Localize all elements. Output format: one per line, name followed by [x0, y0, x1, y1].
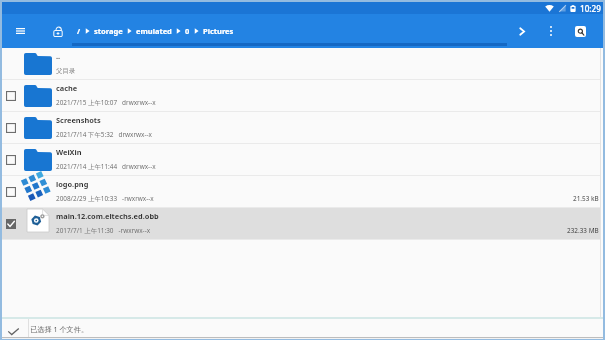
- button[interactable]: Unlock storage: [50, 23, 66, 39]
- staticText: logo.png: [56, 179, 89, 189]
- button[interactable]: Forward: [514, 23, 530, 39]
- staticText: 已选择 1 个文件。: [30, 324, 89, 334]
- staticText: 父目录: [56, 67, 76, 75]
- button[interactable]: main.12.com.eltechs.ed.obb: [2, 208, 603, 239]
- staticText: Screenshots: [56, 115, 101, 125]
- button[interactable]: Confirm selection: [2, 319, 28, 337]
- button[interactable]: logo.png: [2, 176, 603, 207]
- button[interactable]: /: [77, 26, 81, 36]
- staticText: 10:29: [580, 3, 601, 14]
- button[interactable]: Search: [575, 26, 586, 37]
- button[interactable]: More options: [543, 23, 559, 39]
- button[interactable]: ..: [2, 48, 603, 79]
- staticText: ..: [56, 51, 61, 61]
- staticText: cache: [56, 83, 78, 93]
- button[interactable]: Pictures: [203, 26, 234, 36]
- button[interactable]: Screenshots: [2, 112, 603, 143]
- staticText: 2021/7/14 上午11:44 drwxrwx--x: [56, 162, 156, 171]
- staticText: main.12.com.eltechs.ed.obb: [56, 211, 159, 221]
- button[interactable]: emulated: [136, 26, 172, 36]
- staticText: 2021/7/14 下午5:32 drwxrwx--x: [56, 130, 152, 139]
- button[interactable]: Navigation menu: [12, 23, 28, 39]
- button[interactable]: WeiXin: [2, 144, 603, 175]
- staticText: WeiXin: [56, 147, 82, 157]
- staticText: 21.53 kB: [573, 194, 599, 203]
- button[interactable]: cache: [2, 80, 603, 111]
- staticText: 2021/7/15 上午10:07 drwxrwx--x: [56, 98, 156, 107]
- staticText: 2008/2/29 上午10:33 -rwxrwx--x: [56, 194, 154, 203]
- button[interactable]: storage: [94, 26, 123, 36]
- staticText: 2017/7/1 上午11:30 -rwxrwx--x: [56, 226, 151, 235]
- button[interactable]: 0: [185, 26, 190, 36]
- staticText: 232.33 MB: [567, 226, 599, 235]
